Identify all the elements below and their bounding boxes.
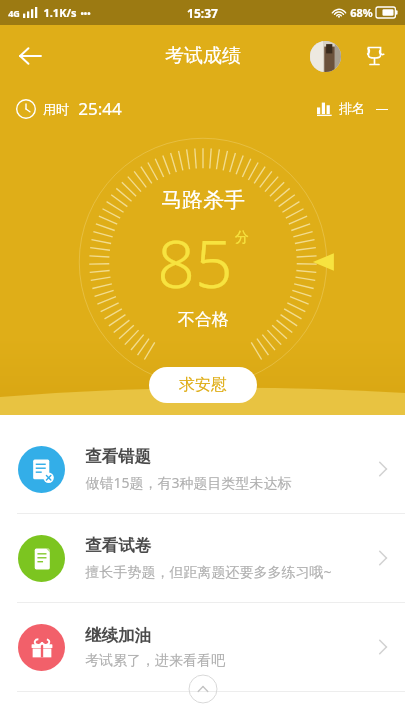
staticText: 求安慰: [179, 375, 227, 395]
staticText: 85: [157, 217, 233, 307]
staticText: 15:37: [187, 5, 218, 21]
button[interactable]: 查看试卷: [0, 514, 405, 602]
staticText: 68%: [350, 5, 373, 20]
button[interactable]: Back: [6, 32, 54, 80]
staticText: 1.1K/s: [43, 5, 77, 20]
staticText: 25:44: [78, 97, 122, 120]
staticText: —: [375, 99, 389, 117]
button[interactable]: Profile: [310, 41, 341, 72]
staticText: 不合格: [178, 309, 229, 330]
staticText: 查看试卷: [85, 535, 151, 556]
staticText: 继续加油: [85, 625, 151, 646]
staticText: 分: [235, 229, 249, 247]
button[interactable]: 继续加油: [0, 603, 405, 691]
button[interactable]: Scroll to top: [188, 674, 218, 704]
staticText: 查看错题: [85, 446, 151, 467]
staticText: 考试累了，进来看看吧: [85, 652, 225, 670]
button[interactable]: Ranking trophy: [357, 39, 391, 73]
staticText: 做错15题，有3种题目类型未达标: [85, 473, 292, 492]
staticText: 排名: [339, 100, 365, 116]
staticText: 用时: [43, 101, 69, 117]
staticText: 4G: [8, 7, 20, 19]
button[interactable]: 查看错题: [0, 425, 405, 513]
staticText: •••: [80, 7, 91, 19]
staticText: 马路杀手: [161, 187, 245, 213]
staticText: 擅长手势题，但距离题还要多多练习哦~: [85, 562, 332, 581]
button[interactable]: 排名: [317, 99, 389, 117]
staticText: 考试成绩: [165, 44, 241, 68]
button[interactable]: 求安慰: [149, 367, 257, 403]
